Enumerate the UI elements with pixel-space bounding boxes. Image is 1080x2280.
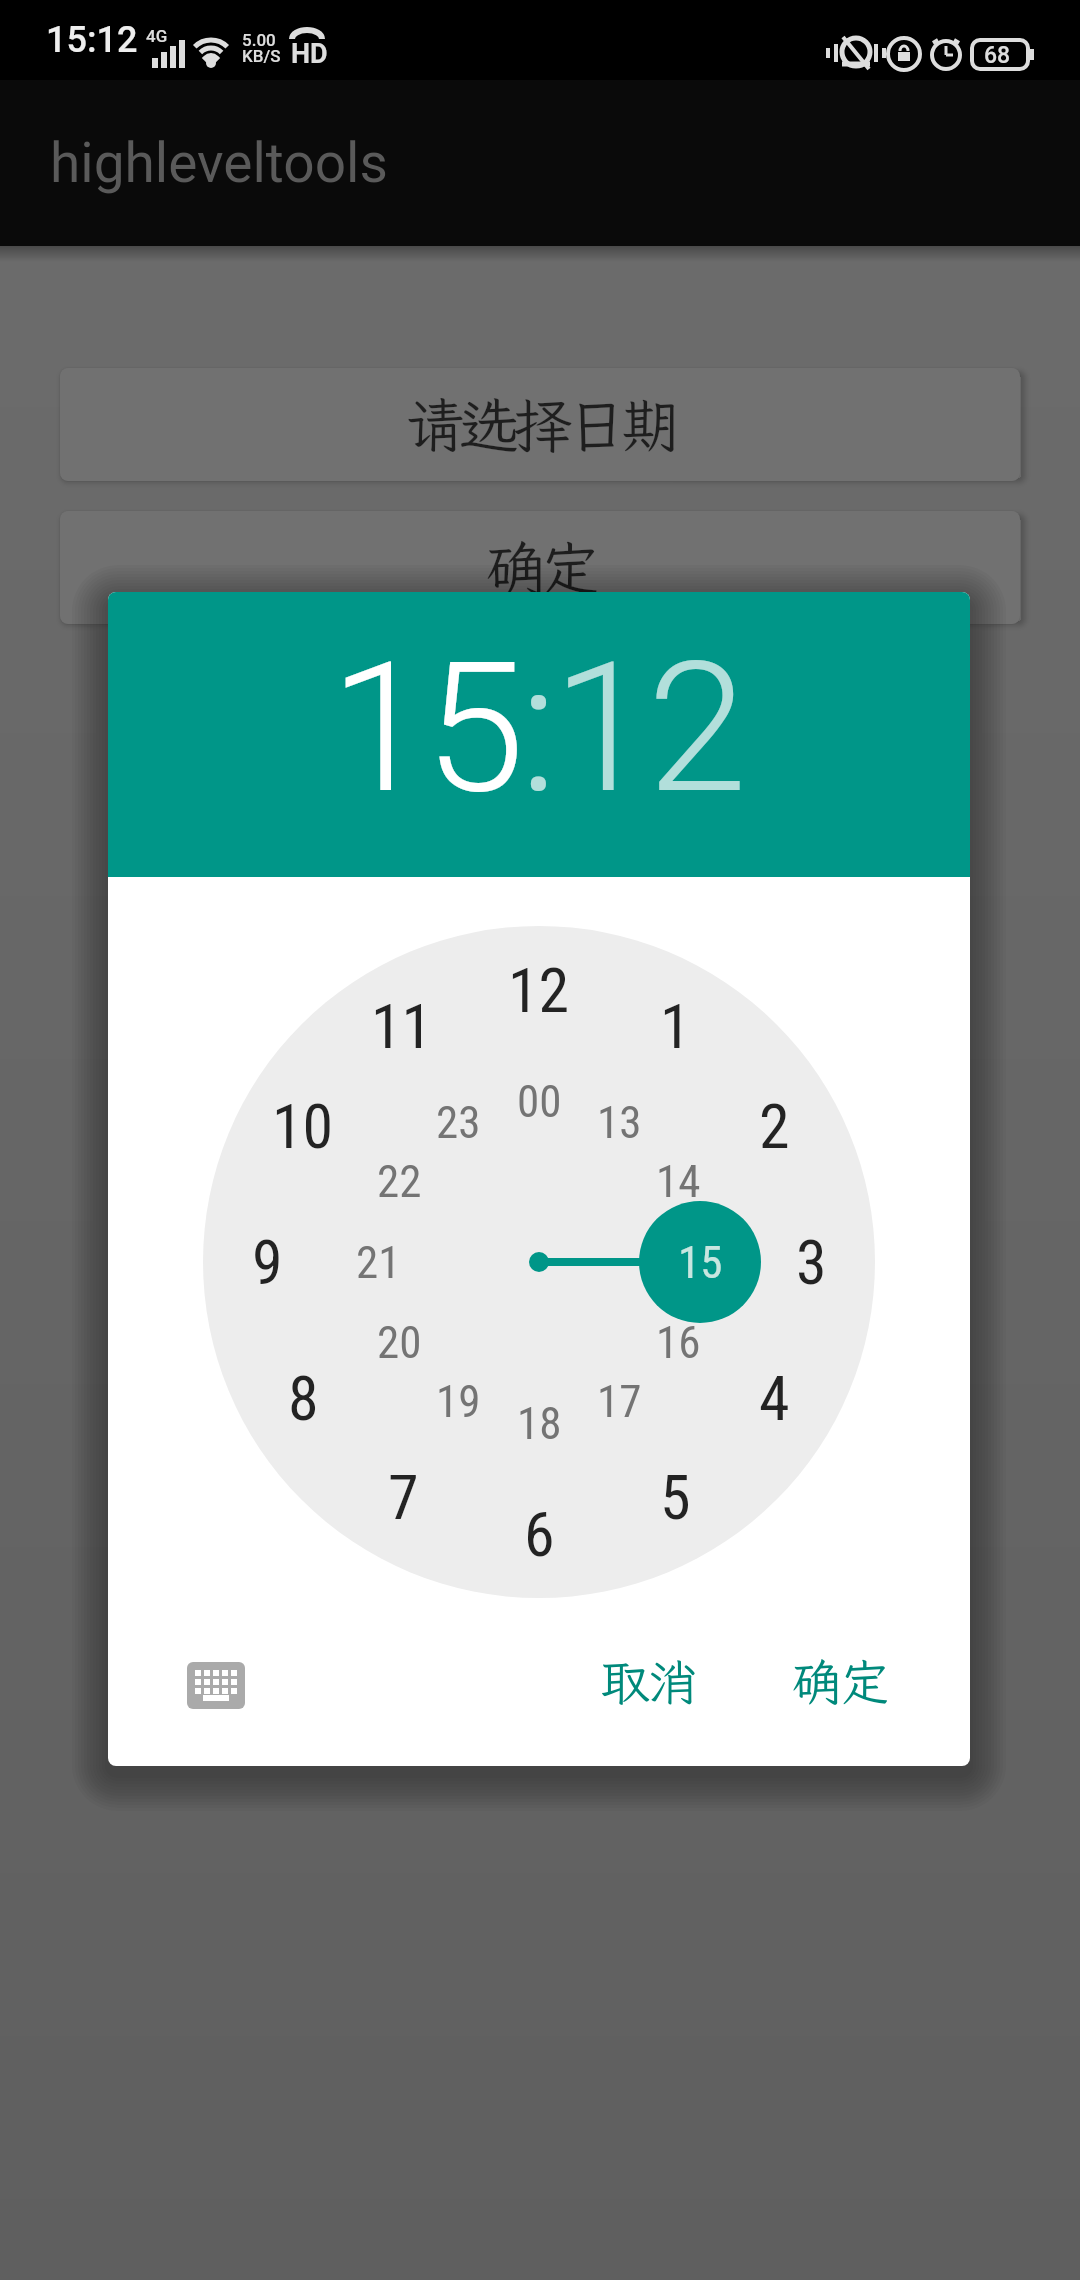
staticText: 6 <box>524 1498 555 1571</box>
staticText: 确定 <box>486 528 594 607</box>
staticText: 15:12 <box>330 623 743 834</box>
staticText: 7 <box>388 1461 419 1534</box>
staticText: 5 <box>660 1461 691 1534</box>
staticText: 12 <box>508 954 570 1027</box>
button[interactable]: 确定 <box>750 1626 930 1736</box>
button[interactable]: 请选择日期 <box>60 368 1020 481</box>
staticText: 4G <box>146 26 168 46</box>
button[interactable] <box>187 1662 245 1709</box>
staticText: 15 <box>678 1236 723 1289</box>
staticText: 15:12 <box>46 19 138 61</box>
staticText: 23 <box>436 1096 481 1149</box>
staticText: 21 <box>356 1236 401 1289</box>
button[interactable]: 确定 <box>60 511 1020 624</box>
staticText: highleveltools <box>50 131 388 195</box>
staticText: 19 <box>436 1375 481 1428</box>
staticText: 10 <box>272 1090 334 1163</box>
staticText: 22 <box>377 1155 422 1208</box>
staticText: 取消 <box>600 1648 696 1714</box>
staticText: 8 <box>288 1362 319 1435</box>
staticText: 16 <box>656 1316 701 1369</box>
staticText: 18 <box>517 1397 562 1450</box>
staticText: 11 <box>371 990 433 1063</box>
staticText: 1 <box>660 990 691 1063</box>
staticText: 20 <box>377 1316 422 1369</box>
staticText: 2 <box>759 1090 790 1163</box>
staticText: 确定 <box>792 1648 888 1714</box>
staticText: 68 <box>984 42 1011 69</box>
staticText: 5.00 KB/S <box>242 30 281 66</box>
staticText: 9 <box>252 1226 283 1299</box>
staticText: HD <box>291 38 328 70</box>
staticText: 00 <box>517 1075 562 1128</box>
button[interactable]: 取消 <box>558 1626 738 1736</box>
staticText: 4 <box>759 1362 790 1435</box>
staticText: 17 <box>597 1375 642 1428</box>
staticText: 14 <box>656 1155 701 1208</box>
staticText: 3 <box>796 1226 827 1299</box>
staticText: 13 <box>597 1096 642 1149</box>
staticText: 请选择日期 <box>405 385 675 464</box>
